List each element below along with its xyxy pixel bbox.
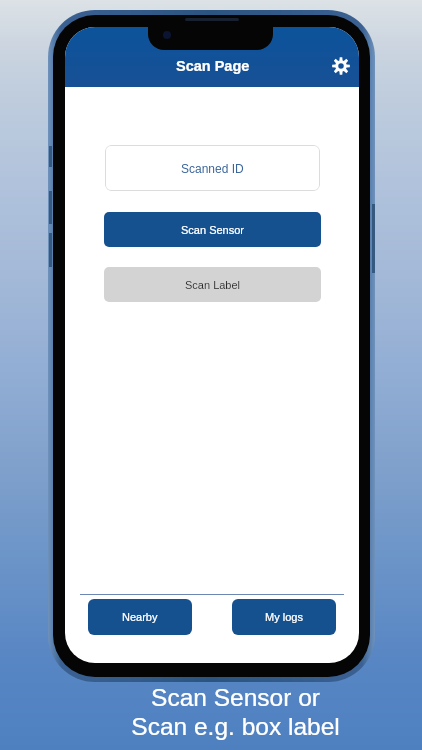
staticText: Scan Page xyxy=(176,58,250,74)
button[interactable]: My logs xyxy=(232,599,336,635)
button[interactable]: Nearby xyxy=(88,599,192,635)
staticText: Scan e.g. box label xyxy=(131,713,340,740)
staticText: Scan Label xyxy=(185,279,241,291)
staticText: Scan Sensor xyxy=(181,224,244,236)
staticText: Scan Sensor or xyxy=(151,684,320,711)
staticText: Nearby xyxy=(122,611,158,623)
button[interactable]: Scanned ID xyxy=(105,145,320,191)
button[interactable]: Scan Sensor xyxy=(104,212,321,247)
staticText: Scanned ID xyxy=(181,162,244,175)
staticText: My logs xyxy=(265,611,303,623)
button[interactable]: Scan Label xyxy=(104,267,321,302)
button[interactable]: Settings xyxy=(324,49,358,83)
